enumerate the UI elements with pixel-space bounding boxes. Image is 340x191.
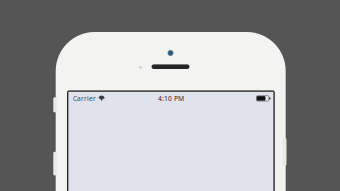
staticText: 4:10 PM [158,94,184,103]
staticText: Carrier [73,94,96,103]
